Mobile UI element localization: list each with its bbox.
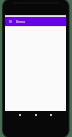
button[interactable]: Back <box>15 111 25 118</box>
button[interactable]: Home <box>31 111 41 118</box>
button[interactable]: Recent apps <box>46 111 56 118</box>
button[interactable]: Open navigation menu <box>8 17 13 26</box>
staticText: Demo <box>16 20 26 24</box>
